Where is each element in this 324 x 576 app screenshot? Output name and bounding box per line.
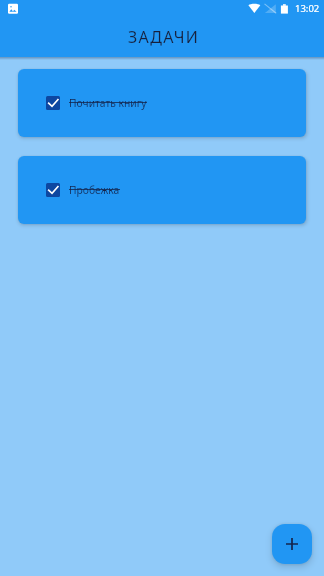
staticText: 13:02 bbox=[295, 2, 320, 15]
staticText: Почитать книгу bbox=[69, 96, 147, 110]
button[interactable]: Почитать книгу bbox=[18, 69, 306, 137]
staticText: Пробежка bbox=[69, 183, 120, 197]
button[interactable]: Пробежка bbox=[18, 156, 306, 224]
staticText: ЗАДАЧИ bbox=[128, 26, 200, 48]
button[interactable]: Add task bbox=[272, 524, 312, 564]
